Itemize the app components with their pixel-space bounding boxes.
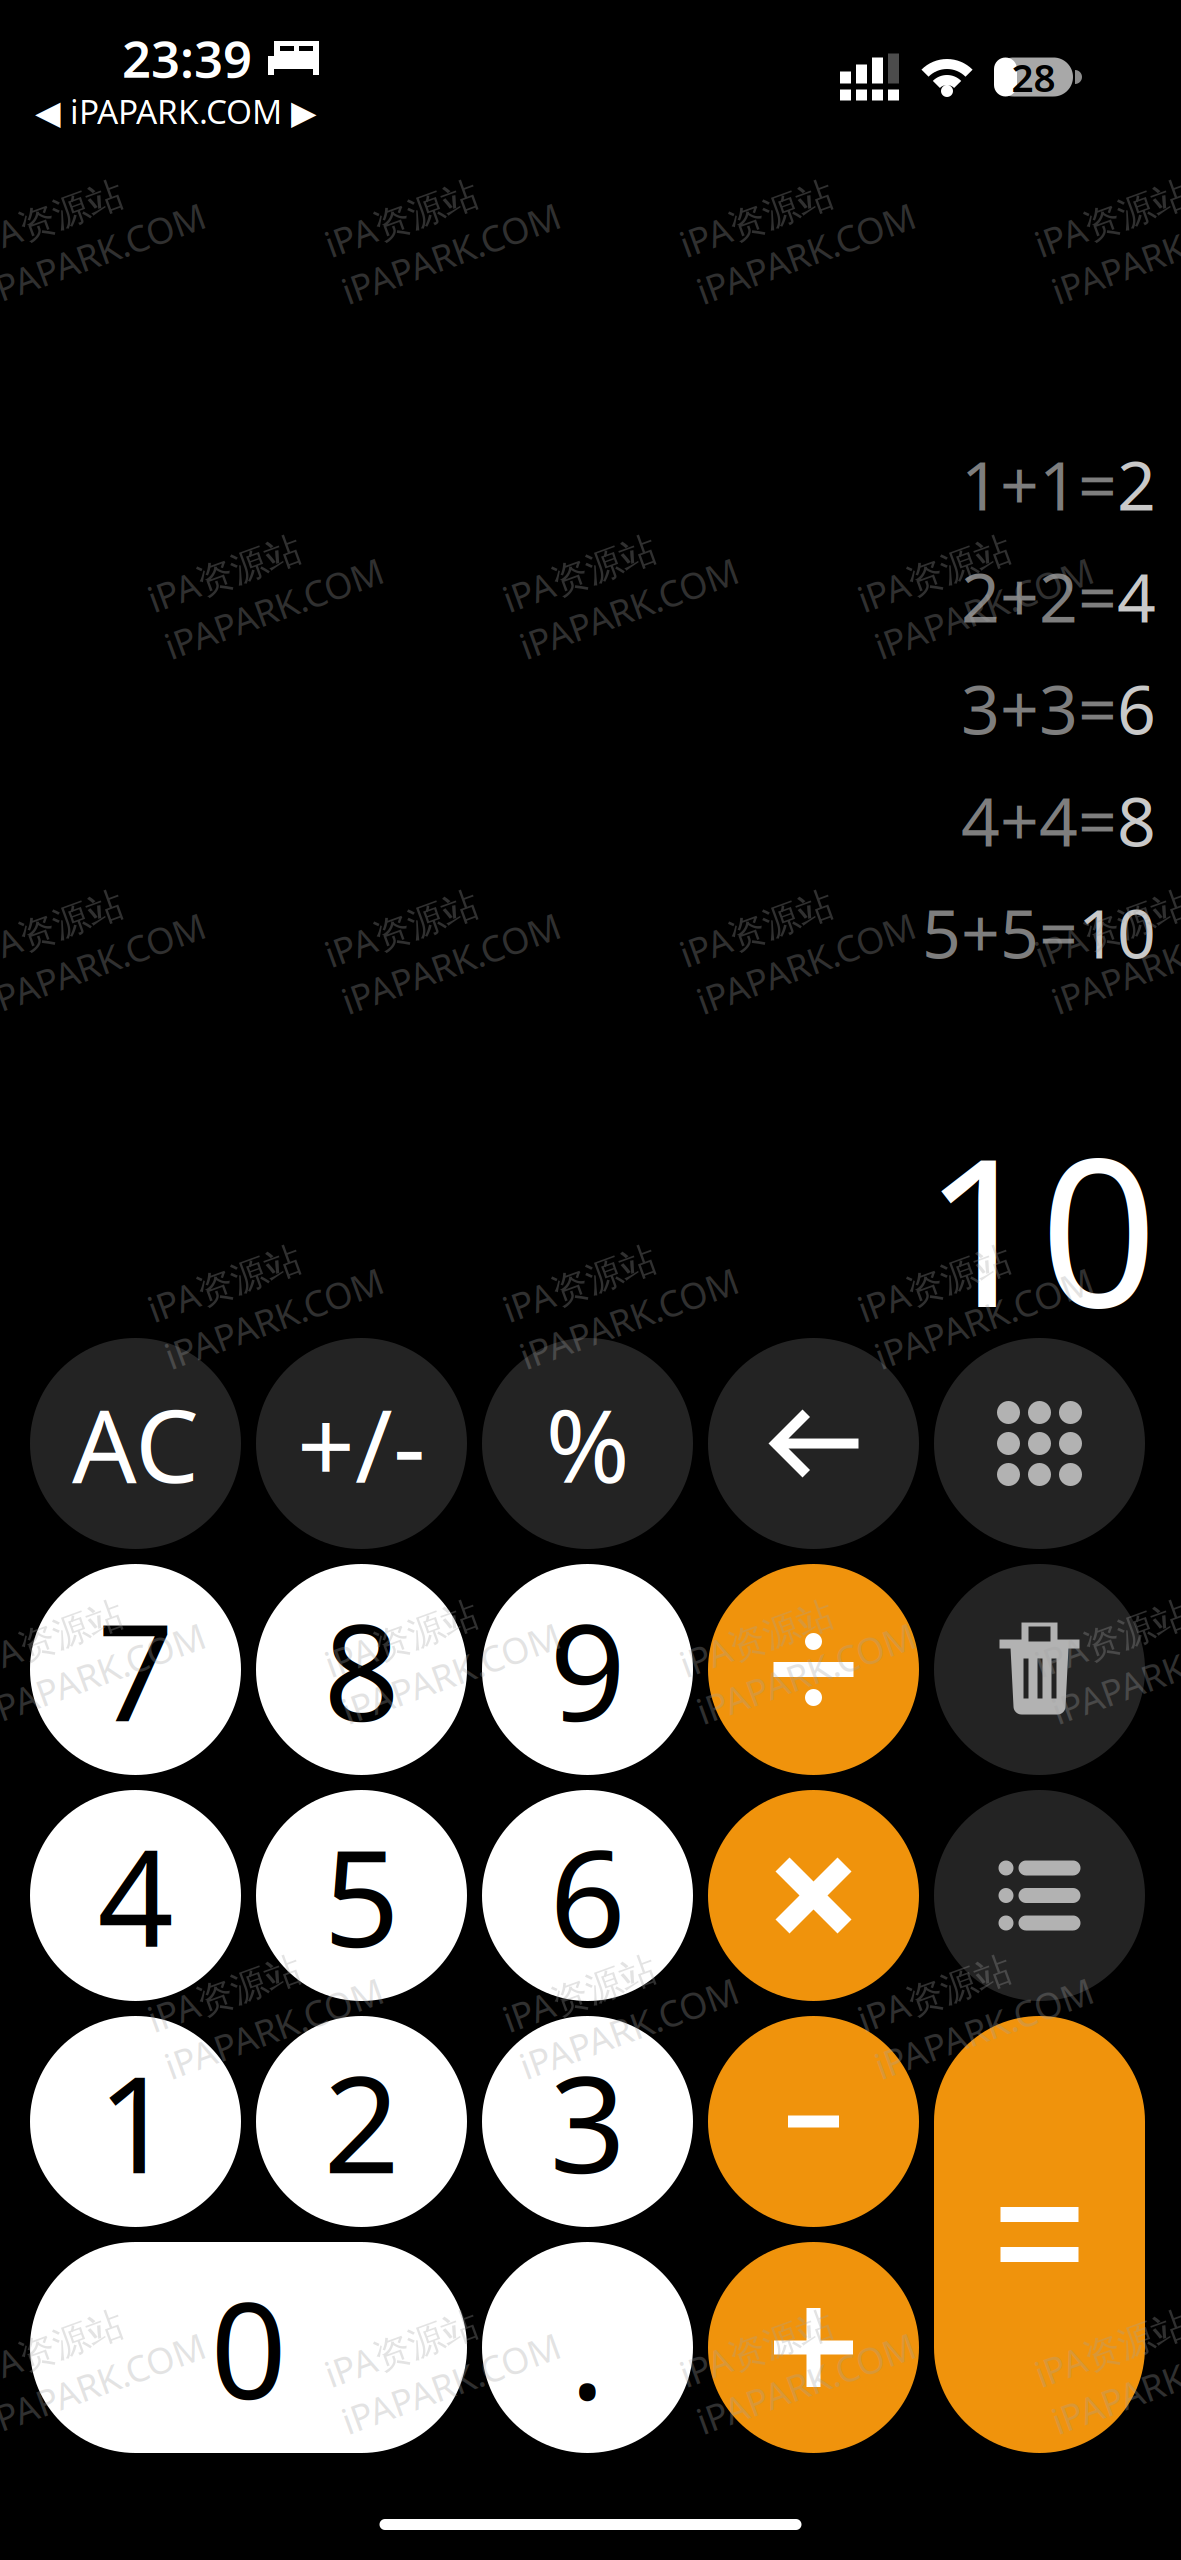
- staticText: 4+4=: [961, 775, 1117, 865]
- staticText: iPAPARK.COM: [1037, 941, 1181, 988]
- staticText: 9: [549, 1581, 625, 1758]
- staticText: iPA资源站: [860, 1956, 1020, 2004]
- staticText: iPAPARK.COM: [505, 2006, 735, 2053]
- button[interactable]: Plus: [708, 2242, 919, 2453]
- staticText: 4: [97, 1807, 173, 1984]
- staticText: 3+3=: [961, 663, 1117, 753]
- staticText: iPA资源站: [327, 181, 487, 229]
- button[interactable]: Multiply: [708, 1790, 919, 2001]
- staticText: 5: [323, 1807, 399, 1984]
- staticText: 6: [549, 1807, 625, 1984]
- staticText: 2: [1117, 439, 1156, 529]
- staticText: iPAPARK.COM: [682, 941, 912, 988]
- button[interactable]: Backspace: [708, 1338, 919, 1549]
- button[interactable]: ◀ iPAPARK.COM ▶: [35, 89, 317, 133]
- staticText: iPAPARK.COM: [150, 1296, 380, 1343]
- staticText: iPAPARK.COM: [860, 586, 1090, 633]
- button[interactable]: Divide: [708, 1564, 919, 1775]
- button[interactable]: Minus: [708, 2016, 919, 2227]
- button[interactable]: 4: [30, 1790, 241, 2001]
- staticText: iPA资源站: [0, 891, 132, 939]
- staticText: iPA资源站: [0, 1601, 132, 1649]
- staticText: iPAPARK.COM: [327, 1651, 557, 1698]
- staticText: 2: [323, 2033, 399, 2210]
- staticText: iPA资源站: [682, 2311, 842, 2359]
- button[interactable]: 6: [482, 1790, 693, 2001]
- staticText: iPA资源站: [860, 536, 1020, 584]
- staticText: iPA资源站: [1037, 181, 1181, 229]
- button[interactable]: Show keypad: [934, 1338, 1145, 1549]
- staticText: iPA资源站: [150, 1246, 310, 1294]
- button[interactable]: 3: [482, 2016, 693, 2227]
- staticText: iPA资源站: [0, 2311, 132, 2359]
- staticText: 2+2=: [961, 551, 1117, 641]
- button[interactable]: History: [934, 1790, 1145, 2001]
- staticText: 6: [1117, 663, 1156, 753]
- staticText: iPAPARK.COM: [1037, 1651, 1181, 1698]
- staticText: iPAPARK.COM: [0, 2361, 202, 2408]
- staticText: %: [545, 1376, 629, 1511]
- staticText: iPA资源站: [505, 1956, 665, 2004]
- staticText: iPAPARK.COM: [150, 586, 380, 633]
- staticText: iPAPARK.COM: [327, 2361, 557, 2408]
- staticText: iPA资源站: [505, 536, 665, 584]
- staticText: iPAPARK.COM: [682, 1651, 912, 1698]
- staticText: iPAPARK.COM: [682, 231, 912, 278]
- staticText: iPAPARK.COM: [150, 2006, 380, 2053]
- button[interactable]: 2: [256, 2016, 467, 2227]
- staticText: iPA资源站: [150, 1956, 310, 2004]
- staticText: 8: [323, 1581, 399, 1758]
- staticText: 0: [210, 2259, 286, 2436]
- staticText: .: [569, 2259, 605, 2436]
- button[interactable]: +/-: [256, 1338, 467, 1549]
- staticText: iPAPARK.COM: [0, 231, 202, 278]
- staticText: iPA资源站: [505, 1246, 665, 1294]
- staticText: 28: [1011, 51, 1055, 103]
- staticText: 10: [923, 1091, 1157, 1364]
- staticText: 4: [1117, 551, 1156, 641]
- staticText: iPAPARK.COM: [505, 586, 735, 633]
- button[interactable]: 8: [256, 1564, 467, 1775]
- staticText: 3: [549, 2033, 625, 2210]
- staticText: iPAPARK.COM: [0, 941, 202, 988]
- button[interactable]: 0: [30, 2242, 467, 2453]
- button[interactable]: 5: [256, 1790, 467, 2001]
- staticText: iPAPARK.COM: [0, 1651, 202, 1698]
- staticText: iPAPARK.COM: [1037, 2361, 1181, 2408]
- staticText: iPA资源站: [0, 181, 132, 229]
- staticText: iPAPARK.COM: [682, 2361, 912, 2408]
- staticText: 1+1=: [961, 439, 1117, 529]
- staticText: 8: [1117, 775, 1156, 865]
- staticText: iPA资源站: [1037, 1601, 1181, 1649]
- staticText: iPAPARK.COM: [1037, 231, 1181, 278]
- button[interactable]: Equals: [934, 2016, 1145, 2453]
- staticText: +/-: [297, 1376, 426, 1511]
- staticText: 5+5=: [922, 887, 1078, 977]
- button[interactable]: .: [482, 2242, 693, 2453]
- button[interactable]: %: [482, 1338, 693, 1549]
- staticText: iPAPARK.COM: [327, 231, 557, 278]
- staticText: iPA资源站: [682, 181, 842, 229]
- staticText: iPA资源站: [1037, 2311, 1181, 2359]
- staticText: iPAPARK.COM: [505, 1296, 735, 1343]
- staticText: iPA资源站: [682, 1601, 842, 1649]
- staticText: iPA资源站: [150, 536, 310, 584]
- button[interactable]: Clear history: [934, 1564, 1145, 1775]
- staticText: iPA资源站: [327, 1601, 487, 1649]
- button[interactable]: AC: [30, 1338, 241, 1549]
- button[interactable]: 9: [482, 1564, 693, 1775]
- staticText: 23:39: [122, 24, 252, 92]
- button[interactable]: 7: [30, 1564, 241, 1775]
- staticText: iPAPARK.COM: [327, 941, 557, 988]
- staticText: iPAPARK.COM: [860, 2006, 1090, 2053]
- staticText: iPA资源站: [1037, 891, 1181, 939]
- staticText: iPA资源站: [860, 1246, 1020, 1294]
- staticText: iPAPARK.COM: [860, 1296, 1090, 1343]
- staticText: AC: [72, 1376, 199, 1511]
- staticText: iPA资源站: [682, 891, 842, 939]
- staticText: iPA资源站: [327, 2311, 487, 2359]
- button[interactable]: 1: [30, 2016, 241, 2227]
- staticText: 7: [97, 1581, 173, 1758]
- staticText: iPA资源站: [327, 891, 487, 939]
- staticText: 10: [1078, 887, 1156, 977]
